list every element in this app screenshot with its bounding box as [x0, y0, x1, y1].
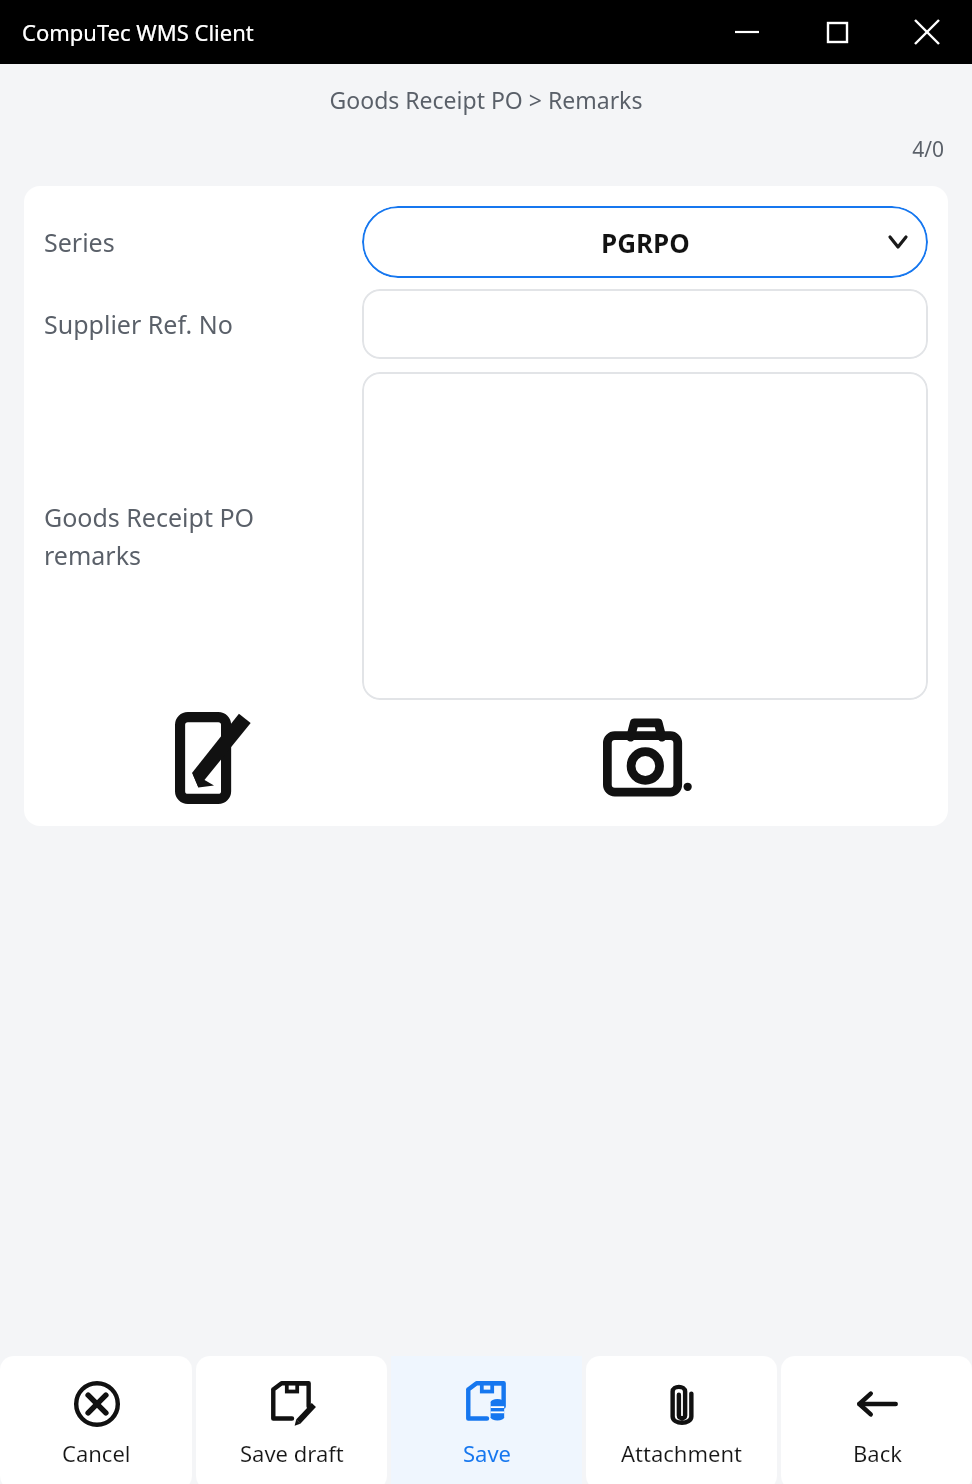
staticText: PGRPO: [601, 225, 690, 260]
button[interactable]: Cancel: [0, 1356, 192, 1484]
button[interactable]: Take photo: [589, 708, 709, 808]
staticText: Back: [853, 1438, 902, 1468]
staticText: Attachment: [621, 1438, 742, 1468]
button[interactable]: Save draft: [196, 1356, 387, 1484]
button[interactable]: Save: [391, 1356, 582, 1484]
button[interactable]: PGRPO: [362, 206, 928, 278]
staticText: 4/0: [0, 135, 944, 164]
button[interactable]: Maximize: [792, 0, 882, 64]
staticText: Save draft: [240, 1438, 344, 1468]
button[interactable]: [362, 372, 928, 700]
button[interactable]: Attachment: [586, 1356, 777, 1484]
button[interactable]: [362, 289, 928, 359]
staticText: Series: [44, 225, 115, 259]
staticText: Goods Receipt PO > Remarks: [0, 84, 972, 115]
button[interactable]: Minimize: [702, 0, 792, 64]
button[interactable]: Signature: [154, 708, 274, 808]
staticText: Cancel: [62, 1438, 131, 1468]
staticText: Save: [463, 1438, 512, 1468]
staticText: Goods Receipt PO remarks: [44, 500, 255, 572]
staticText: CompuTec WMS Client: [22, 17, 254, 47]
button[interactable]: Back: [781, 1356, 972, 1484]
staticText: Supplier Ref. No: [44, 307, 233, 341]
button[interactable]: Close: [882, 0, 972, 64]
